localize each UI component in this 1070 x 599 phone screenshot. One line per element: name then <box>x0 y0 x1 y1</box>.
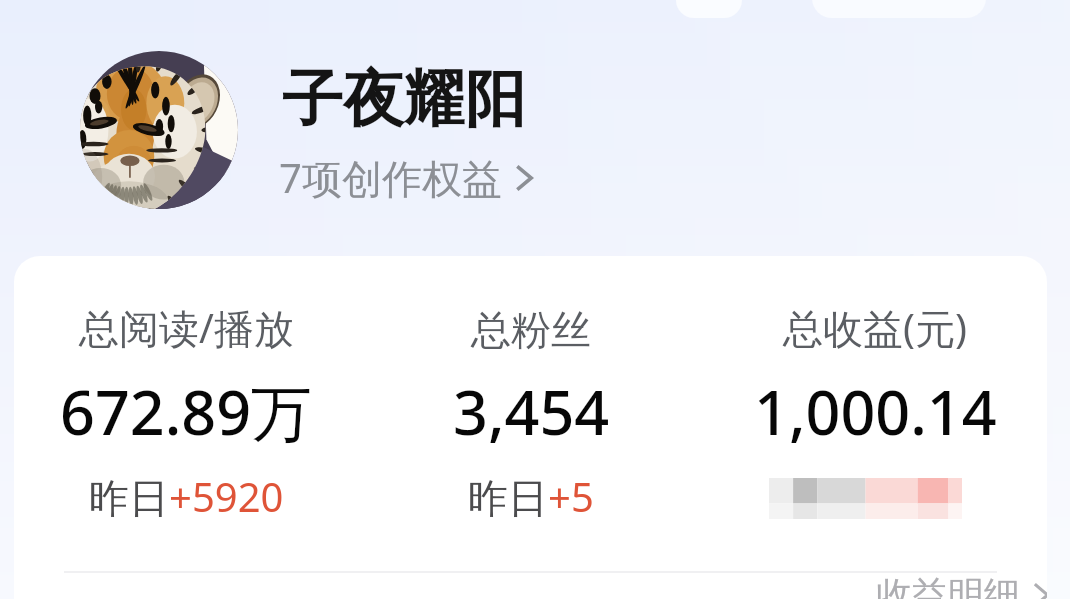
staticText: 672.89万 <box>60 370 313 453</box>
button[interactable]: 总阅读/播放 <box>14 299 359 524</box>
staticText: 7项创作权益 <box>279 150 502 205</box>
button[interactable]: Profile avatar <box>80 51 238 209</box>
button[interactable]: 收益明细 <box>876 572 1047 599</box>
staticText: 昨日+5 <box>468 469 594 524</box>
staticText: 3,454 <box>453 370 610 453</box>
button[interactable]: 总收益(元) <box>703 299 1047 519</box>
staticText: 总阅读/播放 <box>79 300 294 355</box>
button[interactable]: 7项创作权益 <box>279 150 536 205</box>
staticText: 收益明细 <box>876 572 1020 599</box>
staticText: 总收益(元) <box>783 300 967 355</box>
staticText: 1,000.14 <box>754 370 997 453</box>
staticText: 子夜耀阳 <box>282 61 526 138</box>
staticText: 总粉丝 <box>471 305 591 355</box>
button[interactable]: 总粉丝 <box>359 299 703 524</box>
staticText: 昨日+5920 <box>89 469 284 524</box>
